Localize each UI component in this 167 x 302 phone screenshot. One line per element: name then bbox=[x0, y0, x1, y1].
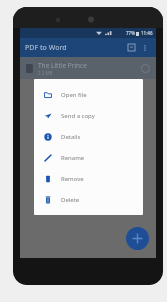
button[interactable]: Remove bbox=[34, 168, 143, 189]
button[interactable]: Details bbox=[34, 126, 143, 147]
button[interactable]: Item options bbox=[140, 63, 151, 74]
button[interactable]: Send a copy bbox=[34, 105, 143, 126]
staticText: 77% bbox=[126, 30, 135, 36]
button[interactable]: Convert bbox=[125, 41, 138, 54]
button[interactable]: Delete bbox=[34, 189, 143, 210]
staticText: Rename bbox=[61, 154, 85, 162]
staticText: PDF to Word bbox=[25, 43, 125, 53]
staticText: Details bbox=[61, 133, 81, 141]
staticText: The Little Prince bbox=[38, 61, 87, 70]
staticText: 2.3 MB bbox=[38, 70, 53, 76]
button[interactable]: More options bbox=[138, 41, 151, 54]
staticText: Open file bbox=[61, 91, 87, 99]
button[interactable]: The Little Prince bbox=[20, 57, 156, 79]
staticText: Send a copy bbox=[61, 112, 95, 120]
button[interactable]: Add bbox=[126, 227, 149, 250]
button[interactable]: Open file bbox=[34, 84, 143, 105]
staticText: Delete bbox=[61, 196, 80, 204]
staticText: Remove bbox=[61, 175, 84, 183]
button[interactable]: Rename bbox=[34, 147, 143, 168]
staticText: 11:46 bbox=[141, 30, 153, 36]
